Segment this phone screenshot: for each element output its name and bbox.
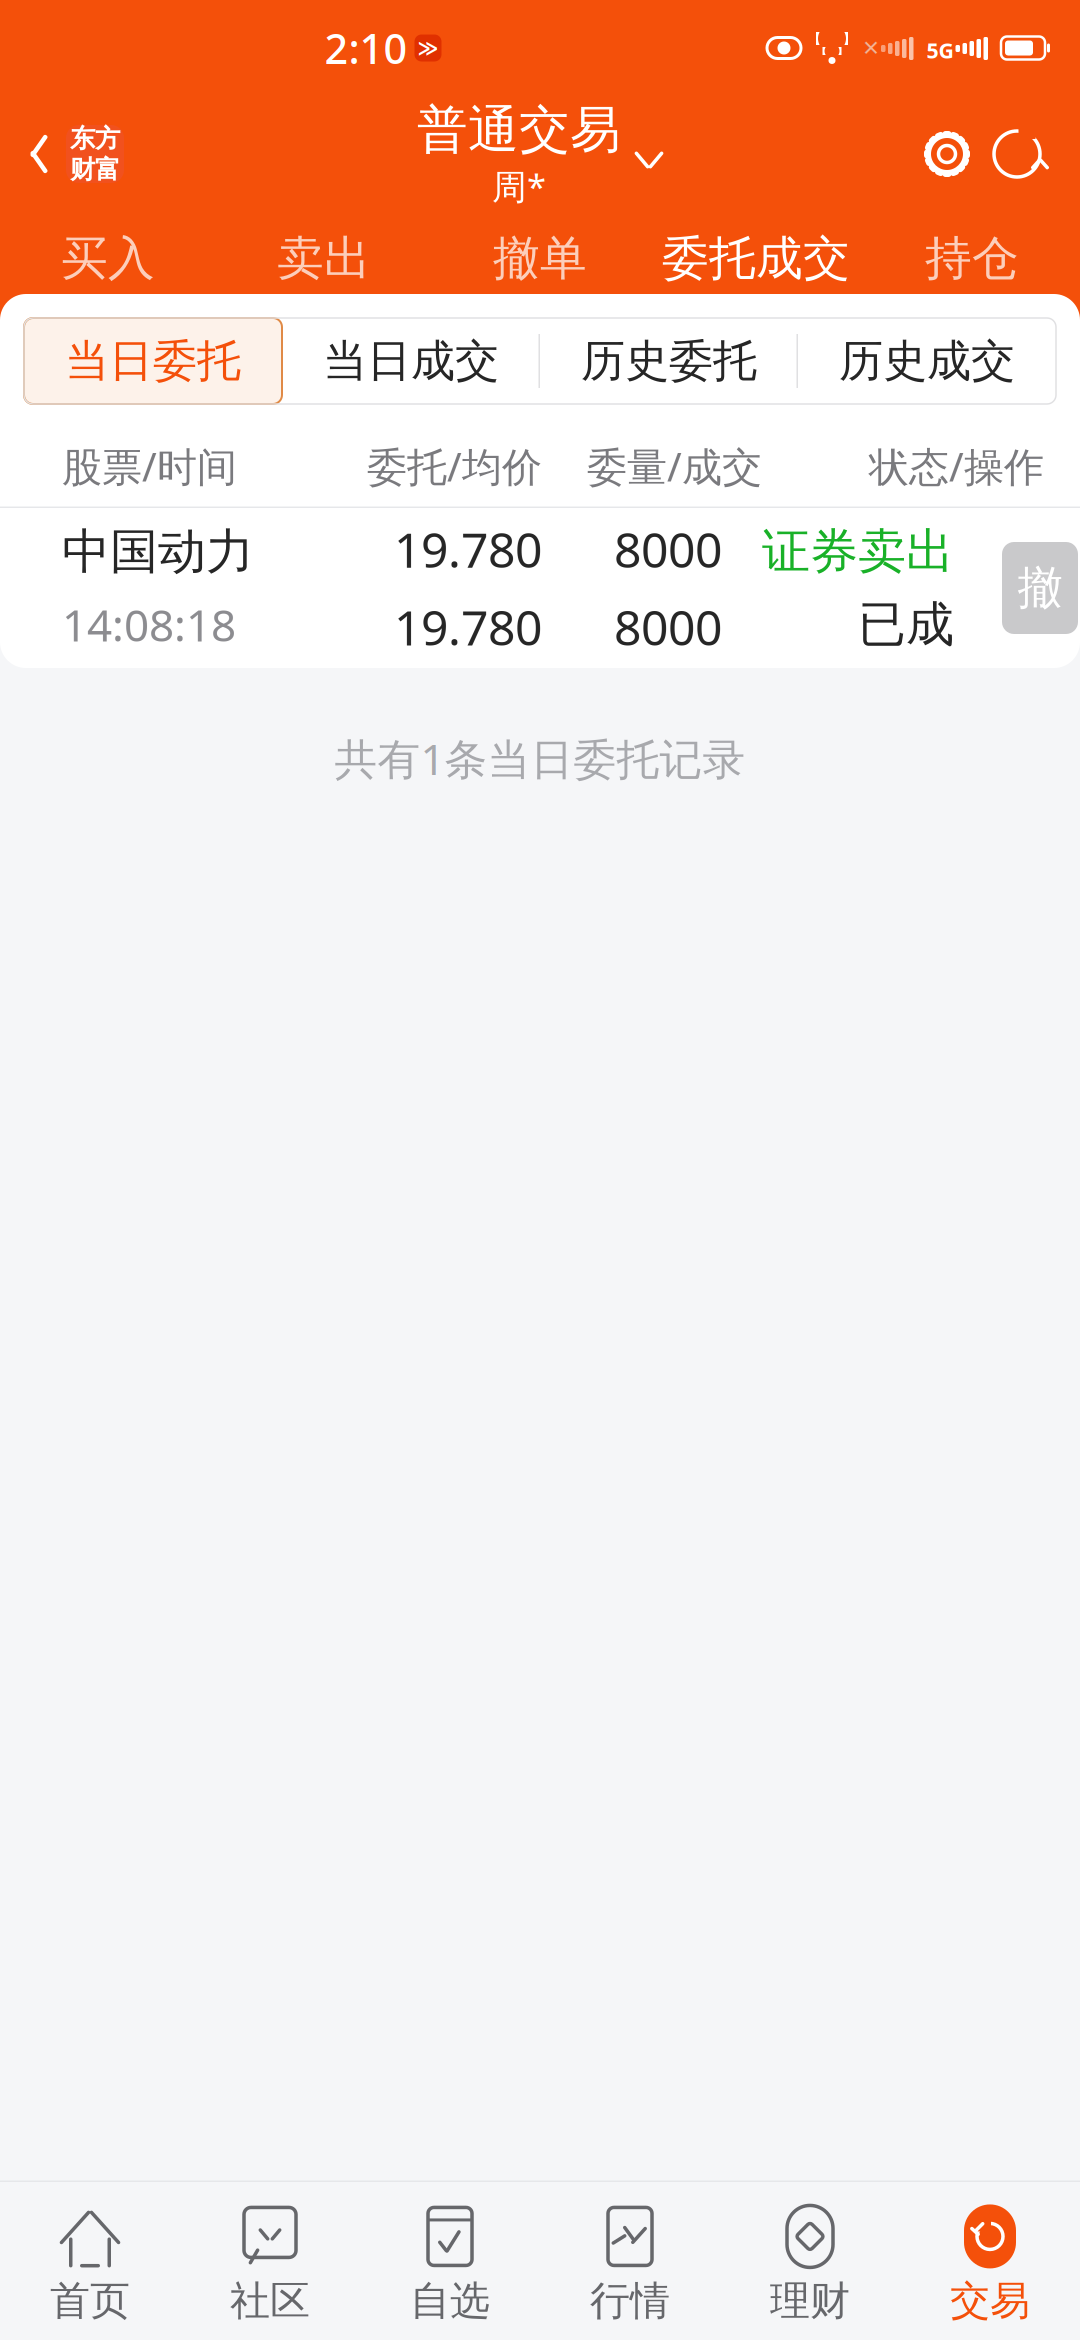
staticText: 股票/时间 [62, 439, 237, 492]
staticText: 委托成交 [662, 230, 850, 287]
button[interactable]: 买入 [0, 220, 216, 312]
staticText: 2:10 [324, 21, 407, 75]
button[interactable]: 社区 [180, 2190, 360, 2331]
button[interactable]: 交易 [900, 2190, 1080, 2331]
button[interactable]: 理财 [720, 2190, 900, 2331]
button[interactable]: 当日成交 [282, 318, 540, 404]
button[interactable]: 当日委托 [24, 318, 282, 404]
staticText: 当日委托 [65, 334, 241, 388]
staticText: 委量/成交 [587, 439, 762, 492]
staticText: 共有1条当日委托记录 [334, 730, 745, 787]
staticText: 持仓 [925, 230, 1019, 287]
button[interactable]: 委托成交 [648, 220, 864, 312]
button[interactable]: 返回 [0, 117, 124, 191]
button[interactable]: 行情 [540, 2190, 720, 2331]
button[interactable]: 中国动力 [0, 508, 1080, 668]
staticText: 撤 [1017, 560, 1062, 616]
staticText: 8000 [614, 595, 722, 659]
staticText: 5G [926, 36, 953, 64]
staticText: 财富 [70, 154, 120, 185]
staticText: 8000 [614, 517, 722, 581]
staticText: 中国动力 [62, 522, 254, 581]
staticText: 行情 [590, 2276, 670, 2325]
staticText: 撤单 [493, 230, 587, 287]
staticText: 首页 [50, 2276, 130, 2325]
staticText: 历史成交 [839, 334, 1015, 388]
staticText: 14:08:18 [62, 595, 236, 654]
staticText: 证券卖出 [762, 522, 954, 581]
button[interactable]: 刷新 [982, 119, 1052, 189]
button[interactable]: 历史委托 [540, 318, 798, 404]
button[interactable]: 持仓 [864, 220, 1080, 312]
staticText: 19.780 [394, 517, 542, 581]
staticText: 买入 [61, 230, 155, 287]
button[interactable]: 普通交易 [417, 99, 663, 209]
button[interactable]: 卖出 [216, 220, 432, 312]
staticText: 委托/均价 [367, 439, 542, 492]
staticText: ≫ [417, 37, 438, 59]
staticText: 当日成交 [323, 334, 499, 388]
staticText: 自选 [410, 2276, 490, 2325]
staticText: 理财 [770, 2276, 850, 2325]
staticText: 社区 [230, 2276, 310, 2325]
button[interactable]: 自选 [360, 2190, 540, 2331]
staticText: 19.780 [394, 595, 542, 659]
staticText: 历史委托 [581, 334, 757, 388]
button[interactable]: 设置 [912, 119, 982, 189]
staticText: 东方 [70, 123, 120, 154]
button[interactable]: 首页 [0, 2190, 180, 2331]
staticText: 已成 [858, 595, 954, 654]
button[interactable]: 撤单 [432, 220, 648, 312]
staticText: 状态/操作 [869, 439, 1044, 492]
staticText: 周* [492, 163, 546, 209]
button[interactable]: 历史成交 [798, 318, 1056, 404]
staticText: 普通交易 [417, 99, 621, 161]
staticText: ✕ [862, 36, 880, 60]
staticText: 交易 [950, 2276, 1030, 2325]
staticText: 卖出 [277, 230, 371, 287]
